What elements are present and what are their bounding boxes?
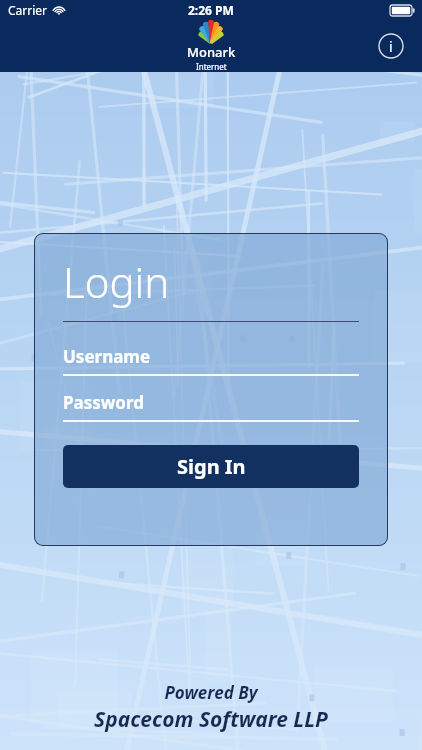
button[interactable]: Password (63, 391, 359, 422)
staticText: Powered By (164, 681, 258, 704)
staticText: Carrier (8, 2, 48, 18)
staticText: Sign In (177, 453, 246, 480)
staticText: Login (63, 253, 170, 310)
button[interactable]: Info (376, 31, 406, 61)
staticText: 2:26 PM (188, 2, 234, 18)
staticText: Username (63, 345, 151, 368)
button[interactable]: Username (63, 345, 359, 376)
staticText: Internet (196, 61, 227, 72)
button[interactable]: Sign In (63, 445, 359, 488)
staticText: Monark (187, 43, 236, 61)
staticText: Spacecom Software LLP (94, 705, 328, 734)
staticText: Password (63, 391, 144, 414)
staticText: i (389, 37, 393, 56)
